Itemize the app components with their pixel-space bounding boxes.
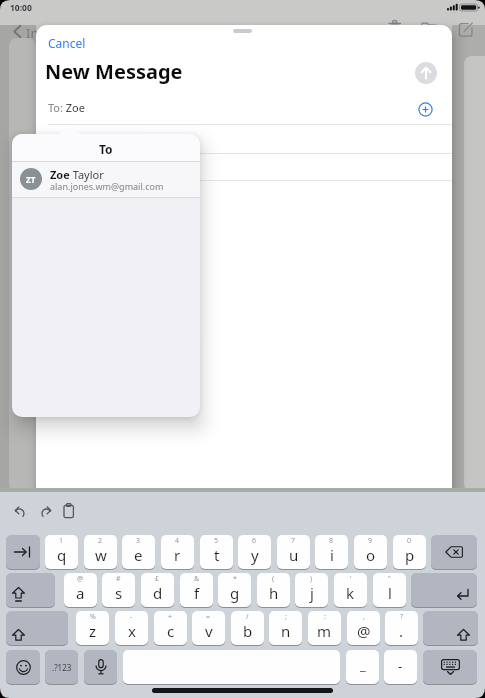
button[interactable]: - [115,611,148,645]
button[interactable]: - [384,650,417,684]
staticText: ; [285,612,287,622]
button[interactable] [431,535,477,569]
button[interactable]: 4 [161,535,194,569]
staticText: £ [155,574,160,584]
staticText: e [134,545,143,565]
button[interactable] [423,611,478,645]
staticText: - [130,612,133,622]
button[interactable] [12,162,200,197]
button[interactable]: 1 [45,535,78,569]
staticText: # [116,574,121,584]
staticText: @ [77,574,84,584]
button[interactable] [12,506,28,519]
button[interactable]: _ [346,650,379,684]
button[interactable]: Cancel [48,35,86,51]
staticText: ' [350,574,352,584]
button[interactable] [423,650,477,684]
staticText: k [346,583,355,603]
staticText: = [206,612,211,622]
staticText: Zoe Taylor [50,167,104,182]
staticText: c [167,621,175,641]
staticText: ( [272,574,275,584]
staticText: q [57,545,67,565]
button[interactable] [418,102,433,117]
staticText: f [194,583,200,603]
button[interactable]: 6 [238,535,271,569]
button[interactable]: & [180,573,213,607]
staticText: w [95,545,107,565]
button[interactable]: .?123 [45,650,78,684]
button[interactable] [458,21,474,37]
button[interactable]: # [102,573,135,607]
button[interactable]: 5 [200,535,233,569]
button[interactable] [6,573,55,607]
staticText: d [153,583,163,603]
button[interactable]: £ [141,573,174,607]
staticText: 9 [368,536,373,546]
staticText: 1 [59,536,64,546]
staticText: 5 [214,536,219,546]
button[interactable]: ; [269,611,302,645]
button[interactable]: 9 [354,535,387,569]
button[interactable]: 8 [315,535,348,569]
staticText: o [366,545,376,565]
button[interactable] [6,650,40,684]
staticText: 3 [136,536,141,546]
button[interactable] [84,650,117,684]
staticText: z [89,621,97,641]
staticText: To [99,141,113,157]
staticText: 6 [252,536,257,546]
button[interactable]: = [192,611,225,645]
staticText: g [230,583,240,603]
staticText: , [363,612,365,622]
staticText: _ [360,656,366,674]
button[interactable] [415,62,437,84]
button[interactable]: % [76,611,109,645]
staticText: 4 [175,536,180,546]
staticText: 2 [98,536,103,546]
button[interactable]: 7 [277,535,310,569]
button[interactable]: 3 [122,535,155,569]
staticText: / [246,612,249,622]
staticText: % [90,612,96,622]
staticText: 7 [291,536,296,546]
button[interactable]: : [308,611,341,645]
staticText: New Message [45,58,183,85]
button[interactable]: / [231,611,264,645]
staticText: alan.jones.wm@gmail.com [50,180,164,192]
button[interactable] [123,650,340,684]
staticText: 10:00 [10,2,32,14]
staticText: : [324,612,326,622]
button[interactable]: * [218,573,251,607]
staticText: t [214,545,220,565]
button[interactable]: 2 [84,535,117,569]
button[interactable]: @ [64,573,97,607]
staticText: x [128,621,136,641]
button[interactable]: + [154,611,187,645]
button[interactable]: ? [385,611,418,645]
staticText: + [168,612,173,622]
staticText: .?123 [52,662,72,673]
staticText: * [233,574,237,584]
button[interactable]: ) [295,573,328,607]
staticText: - [398,657,403,675]
button[interactable]: , [347,611,380,645]
staticText: j [310,583,314,603]
button[interactable]: ( [257,573,290,607]
button[interactable]: ' [334,573,367,607]
staticText: m [317,621,332,641]
staticText: l [388,583,392,603]
button[interactable] [6,611,68,645]
button[interactable] [63,503,76,519]
staticText: 8 [329,536,334,546]
staticText: n [281,621,291,641]
staticText: u [289,545,299,565]
button[interactable]: 0 [393,535,426,569]
button[interactable]: " [373,573,406,607]
staticText: a [76,583,85,603]
staticText: Inbox [26,24,61,42]
button[interactable] [411,573,477,607]
button[interactable] [6,535,40,569]
button[interactable] [38,506,54,519]
staticText: ZT [26,174,36,185]
